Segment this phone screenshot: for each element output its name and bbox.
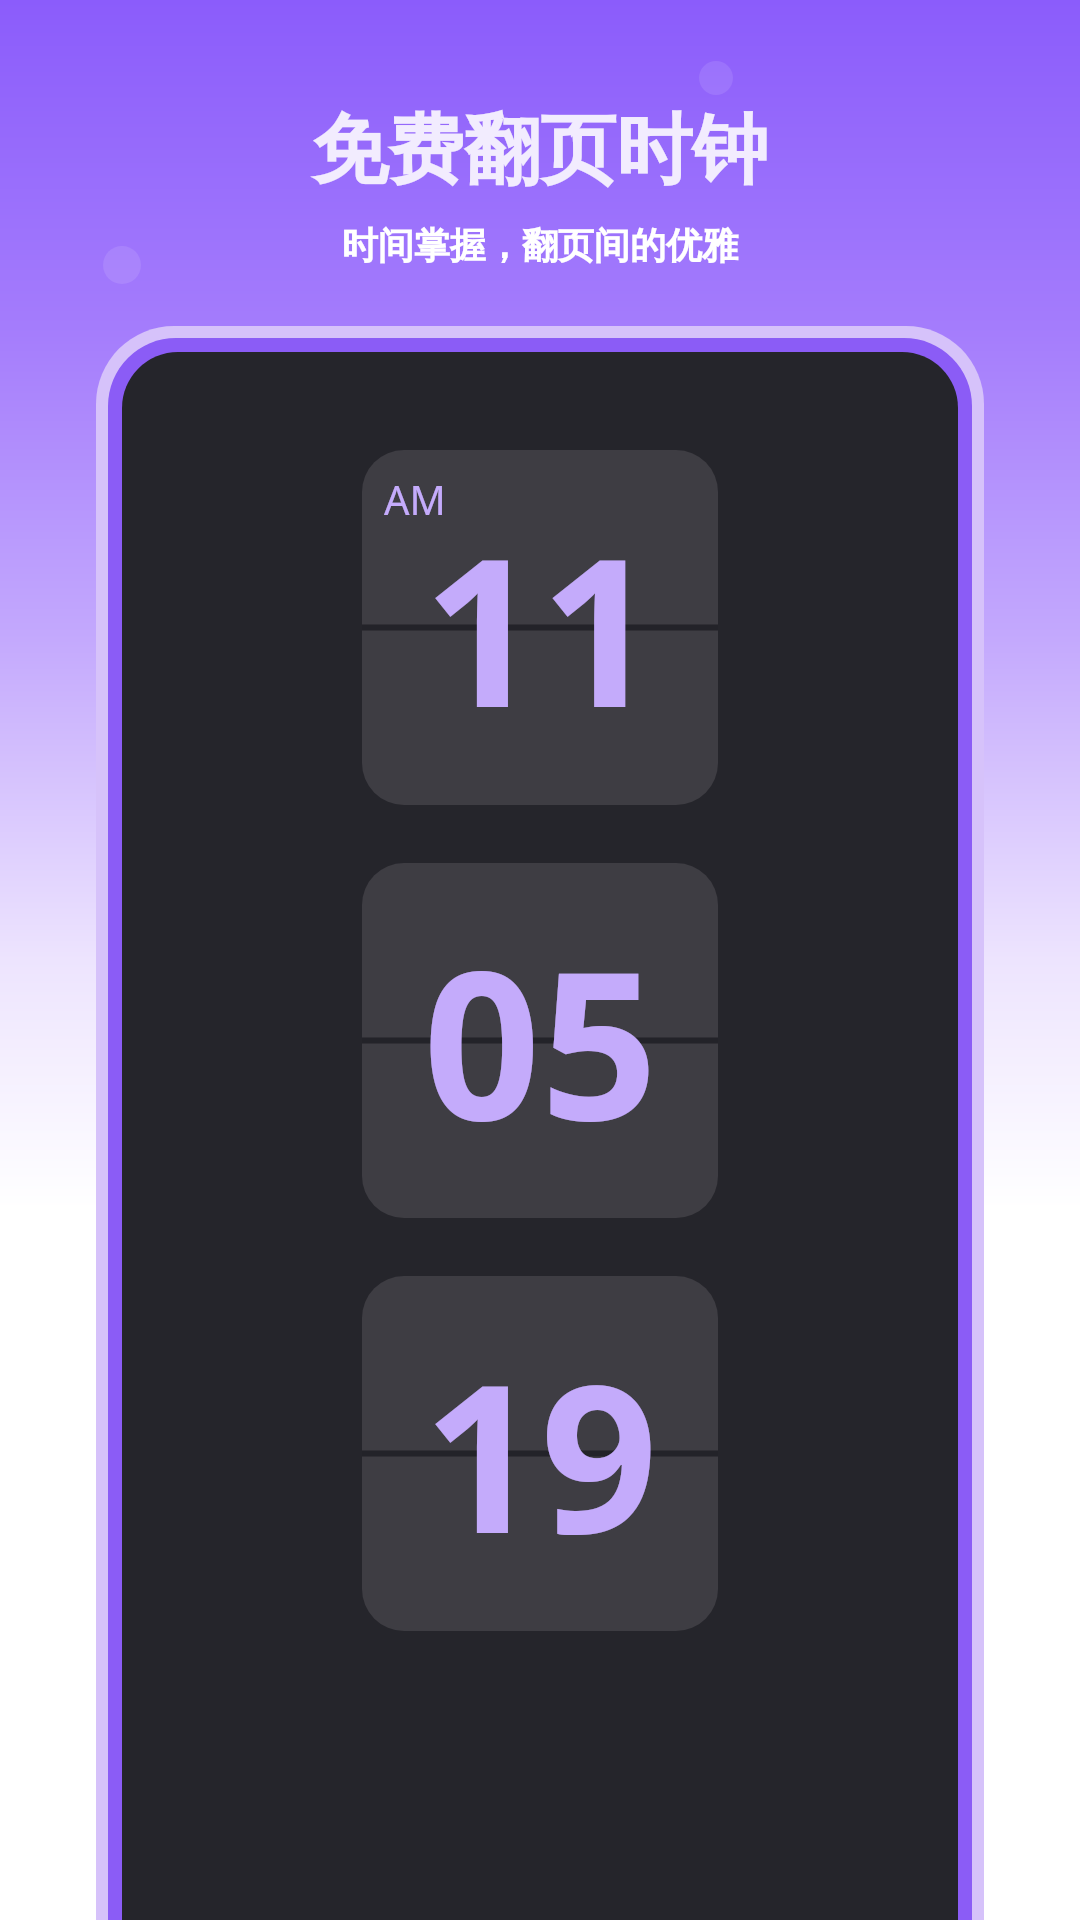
staticText: 免费翻页时钟 [312, 103, 768, 199]
button[interactable]: Flip digit 05 [362, 863, 718, 1218]
staticText: 05 [423, 901, 658, 1180]
button[interactable]: Flip digit 11 [362, 450, 718, 805]
staticText: 时间掌握，翻页间的优雅 [342, 223, 738, 268]
staticText: 19 [423, 1314, 658, 1593]
staticText: 11 [423, 488, 658, 767]
staticText: AM [384, 472, 446, 526]
button[interactable]: Flip digit 19 [362, 1276, 718, 1631]
